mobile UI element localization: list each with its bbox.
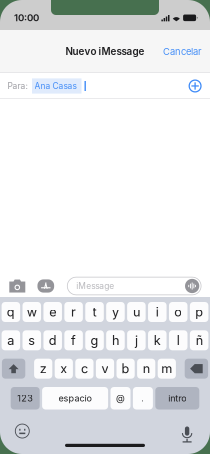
button[interactable]: f — [64, 330, 83, 350]
staticText: f — [71, 333, 76, 348]
button[interactable]: p — [190, 302, 208, 322]
staticText: . — [141, 393, 144, 404]
button[interactable]: @ — [110, 387, 130, 409]
staticText: v — [101, 361, 108, 376]
staticText: iMessage — [76, 281, 114, 291]
staticText: c — [81, 361, 88, 376]
button[interactable]: Add contact — [189, 80, 201, 92]
button[interactable]: Record audio — [185, 279, 199, 293]
staticText: r — [71, 304, 76, 320]
button[interactable]: z — [34, 359, 52, 379]
button[interactable]: Delete — [185, 359, 208, 379]
staticText: t — [92, 304, 96, 320]
button[interactable]: l — [169, 330, 187, 350]
button[interactable]: n — [137, 359, 155, 379]
staticText: espacio — [59, 393, 92, 404]
button[interactable]: e — [43, 302, 62, 322]
button[interactable]: d — [43, 330, 62, 350]
staticText: q — [7, 304, 15, 320]
staticText: i — [156, 304, 159, 320]
button[interactable]: j — [127, 330, 146, 350]
staticText: s — [28, 333, 35, 348]
staticText: j — [135, 333, 138, 348]
button[interactable]: i — [148, 302, 166, 322]
button[interactable]: Dictation — [181, 423, 193, 439]
button[interactable]: u — [127, 302, 146, 322]
staticText: u — [133, 304, 140, 320]
button[interactable]: a — [2, 330, 20, 350]
button[interactable]: Camera — [7, 278, 27, 294]
staticText: g — [90, 333, 98, 348]
staticText: Cancelar — [163, 46, 202, 57]
staticText: o — [174, 304, 182, 320]
button[interactable]: r — [64, 302, 83, 322]
button[interactable]: Cancelar — [159, 40, 206, 63]
button[interactable]: Apps — [36, 278, 56, 294]
button[interactable]: 123 — [11, 387, 40, 409]
button[interactable]: intro — [155, 387, 199, 409]
button[interactable]: w — [22, 302, 41, 322]
button[interactable]: s — [22, 330, 41, 350]
button[interactable]: espacio — [42, 387, 108, 409]
button[interactable]: q — [2, 302, 20, 322]
staticText: a — [7, 333, 14, 348]
staticText: @ — [116, 393, 125, 404]
button[interactable]: k — [148, 330, 166, 350]
staticText: y — [112, 304, 119, 320]
button[interactable]: t — [85, 302, 104, 322]
staticText: z — [40, 361, 47, 376]
staticText: p — [195, 304, 203, 320]
button[interactable]: v — [96, 359, 114, 379]
staticText: w — [27, 304, 37, 320]
staticText: l — [177, 333, 180, 348]
staticText: intro — [168, 393, 186, 404]
button[interactable]: b — [116, 359, 135, 379]
staticText: Nuevo iMessage — [65, 45, 144, 57]
staticText: d — [49, 333, 57, 348]
button[interactable]: Emoji keyboard — [15, 424, 29, 438]
staticText: 10:00 — [14, 12, 39, 24]
staticText: 123 — [17, 393, 33, 404]
button[interactable]: m — [158, 359, 176, 379]
staticText: Para: — [7, 81, 27, 91]
button[interactable]: o — [169, 302, 187, 322]
staticText: h — [112, 333, 119, 348]
staticText: e — [49, 304, 56, 320]
staticText: b — [122, 361, 130, 376]
button[interactable]: ñ — [190, 330, 208, 350]
staticText: m — [161, 361, 172, 376]
staticText: x — [60, 361, 67, 376]
button[interactable]: g — [85, 330, 104, 350]
button[interactable]: . — [133, 387, 153, 409]
staticText: k — [154, 333, 161, 348]
button[interactable]: c — [75, 359, 93, 379]
button[interactable]: x — [55, 359, 73, 379]
button[interactable]: y — [106, 302, 125, 322]
staticText: Ana Casas — [34, 81, 76, 91]
staticText: n — [143, 361, 150, 376]
staticText: ñ — [196, 333, 203, 348]
button[interactable]: Shift — [2, 359, 25, 379]
button[interactable]: h — [106, 330, 125, 350]
